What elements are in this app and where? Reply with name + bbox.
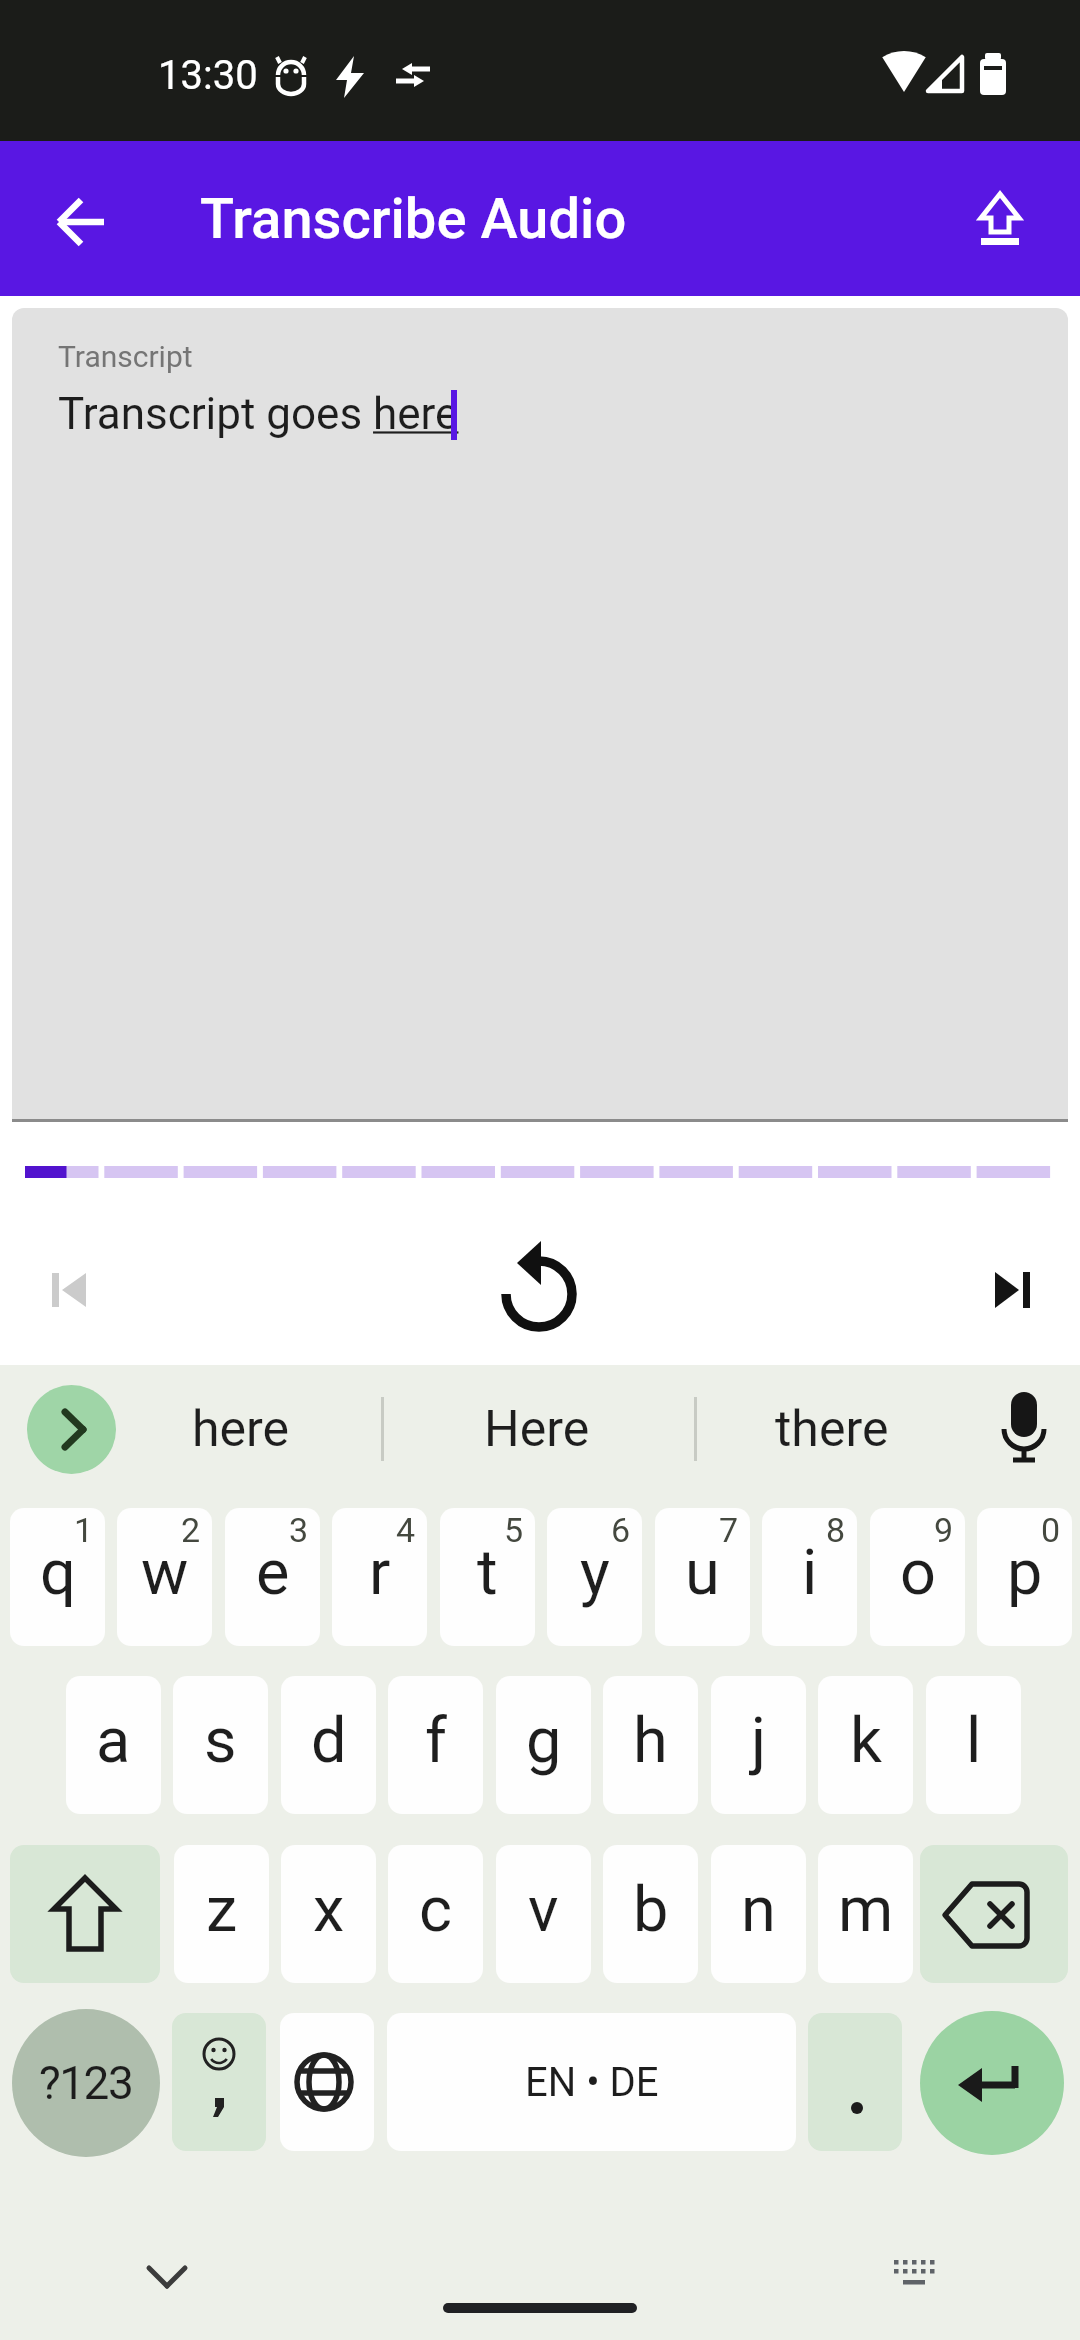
staticText: 2 (181, 1510, 201, 1550)
button[interactable] (808, 2013, 902, 2151)
button[interactable]: x (281, 1845, 376, 1983)
button[interactable]: a (66, 1676, 161, 1814)
button[interactable]: z (174, 1845, 269, 1983)
staticText: 1 (74, 1510, 94, 1550)
staticText: Transcribe Audio (200, 186, 627, 252)
button[interactable] (494, 1249, 584, 1339)
button[interactable] (172, 2013, 266, 2151)
button[interactable]: p (977, 1508, 1072, 1646)
button[interactable]: b (603, 1845, 698, 1983)
staticText: h (633, 1704, 668, 1778)
staticText: 5 (504, 1510, 524, 1550)
button[interactable]: c (388, 1845, 483, 1983)
button[interactable]: m (818, 1845, 913, 1983)
button[interactable]: l (926, 1676, 1021, 1814)
staticText: 9 (934, 1510, 954, 1550)
button[interactable]: o (870, 1508, 965, 1646)
staticText: ?123 (39, 2056, 133, 2110)
staticText: 4 (396, 1510, 416, 1550)
button[interactable]: h (603, 1676, 698, 1814)
button[interactable]: j (711, 1676, 806, 1814)
button[interactable] (10, 1845, 160, 1983)
button[interactable]: n (711, 1845, 806, 1983)
button[interactable]: q (10, 1508, 105, 1646)
staticText: there (775, 1400, 889, 1459)
button[interactable]: Here (447, 1392, 627, 1466)
staticText: f (425, 1704, 447, 1778)
button[interactable]: there (742, 1392, 922, 1466)
staticText: 0 (1041, 1510, 1061, 1550)
button[interactable]: w (117, 1508, 212, 1646)
staticText: g (526, 1704, 562, 1778)
staticText: s (204, 1704, 237, 1778)
button[interactable]: EN • DE (387, 2013, 796, 2151)
button[interactable] (995, 1385, 1053, 1470)
staticText: x (313, 1873, 345, 1947)
staticText: 13:30 (158, 52, 258, 99)
staticText: u (685, 1536, 720, 1610)
staticText: j (751, 1704, 767, 1778)
staticText: l (966, 1704, 982, 1778)
button[interactable]: e (225, 1508, 320, 1646)
button[interactable]: y (547, 1508, 642, 1646)
button[interactable]: ?123 (12, 2009, 160, 2157)
button[interactable] (920, 1845, 1068, 1983)
button[interactable] (12, 308, 1068, 1122)
staticText: i (802, 1536, 818, 1610)
button[interactable]: k (818, 1676, 913, 1814)
staticText: Transcript goes here (58, 388, 459, 440)
staticText: here (192, 1400, 290, 1459)
staticText: z (206, 1873, 238, 1947)
button[interactable]: t (440, 1508, 535, 1646)
button[interactable]: r (332, 1508, 427, 1646)
button[interactable] (34, 1256, 102, 1324)
staticText: Transcript (58, 339, 193, 374)
staticText: d (311, 1704, 347, 1778)
staticText: k (850, 1704, 882, 1778)
button[interactable] (27, 1385, 116, 1474)
staticText: c (419, 1873, 452, 1947)
staticText: v (528, 1873, 559, 1947)
staticText: 8 (826, 1510, 846, 1550)
staticText: t (477, 1536, 498, 1610)
staticText: q (40, 1536, 76, 1610)
button[interactable]: f (388, 1676, 483, 1814)
staticText: e (256, 1536, 290, 1610)
button[interactable] (36, 177, 126, 267)
button[interactable]: v (496, 1845, 591, 1983)
staticText: r (369, 1536, 391, 1610)
button[interactable] (880, 2244, 944, 2306)
button[interactable]: i (762, 1508, 857, 1646)
button[interactable]: d (281, 1676, 376, 1814)
button[interactable] (280, 2013, 374, 2151)
button[interactable]: u (655, 1508, 750, 1646)
button[interactable] (978, 1256, 1046, 1324)
button[interactable]: here (151, 1392, 331, 1466)
staticText: y (580, 1536, 610, 1610)
button[interactable]: s (173, 1676, 268, 1814)
staticText: m (838, 1873, 894, 1947)
staticText: o (900, 1536, 936, 1610)
button[interactable] (920, 2011, 1064, 2155)
staticText: b (633, 1873, 669, 1947)
staticText: 6 (611, 1510, 631, 1550)
button[interactable] (964, 186, 1036, 258)
button[interactable] (132, 2244, 202, 2306)
staticText: Here (484, 1400, 590, 1459)
staticText: EN • DE (525, 2059, 659, 2106)
staticText: a (96, 1704, 131, 1778)
staticText: w (141, 1536, 189, 1610)
staticText: 7 (719, 1510, 739, 1550)
staticText: 3 (289, 1510, 309, 1550)
staticText: n (741, 1873, 776, 1947)
button[interactable]: g (496, 1676, 591, 1814)
staticText: p (1007, 1536, 1043, 1610)
